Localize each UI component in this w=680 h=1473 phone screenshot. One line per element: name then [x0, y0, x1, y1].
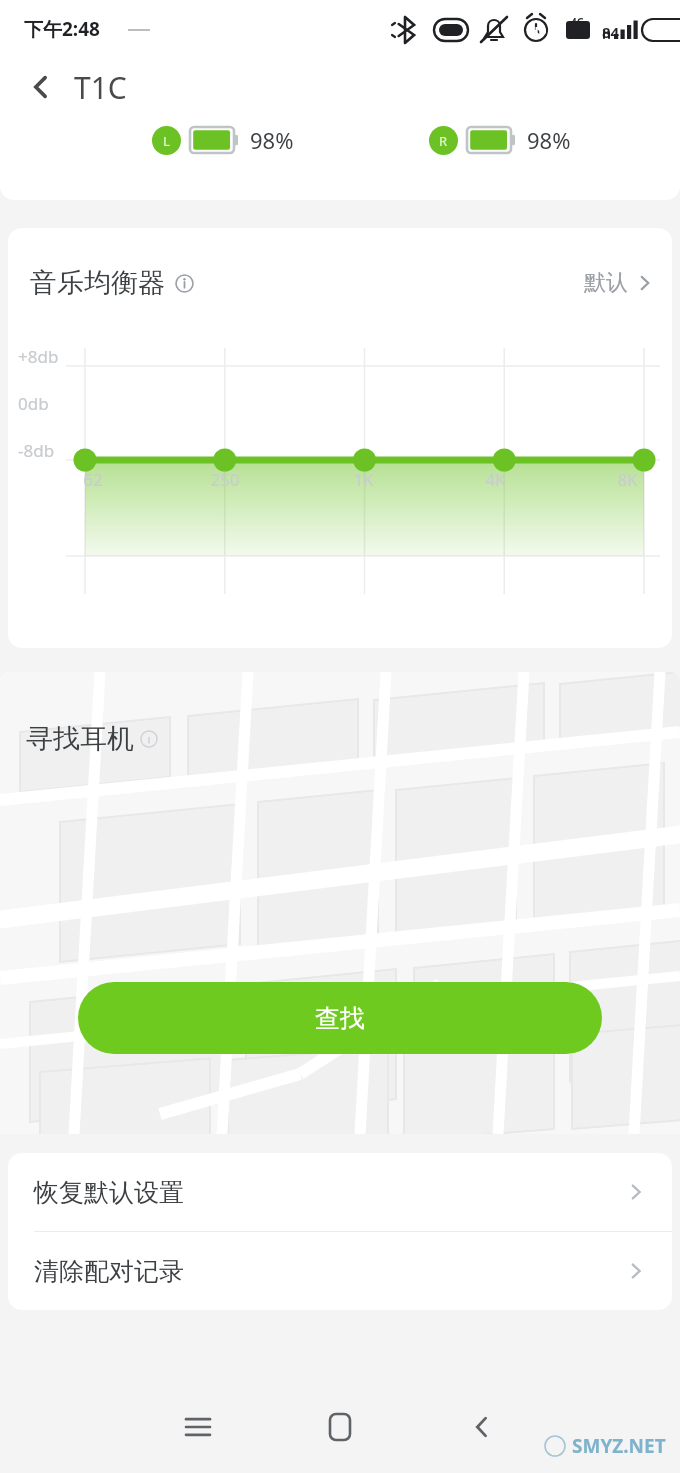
- button[interactable]: 清除配对记录: [8, 1232, 672, 1310]
- staticText: HD: [530, 23, 547, 38]
- button[interactable]: Recent apps: [160, 1389, 236, 1465]
- staticText: 98%: [250, 125, 294, 155]
- staticText: 清除配对记录: [34, 1256, 184, 1287]
- button[interactable]: 默认: [584, 269, 654, 297]
- staticText: T1C: [74, 67, 127, 108]
- staticText: 查找: [315, 1003, 365, 1034]
- button[interactable]: 恢复默认设置: [8, 1153, 672, 1231]
- staticText: SMYZ.NET: [572, 1433, 666, 1459]
- button[interactable]: Back: [444, 1389, 520, 1465]
- staticText: 恢复默认设置: [34, 1177, 184, 1208]
- staticText: -8db: [18, 439, 55, 462]
- staticText: L: [163, 132, 170, 150]
- staticText: 4G: [571, 15, 584, 29]
- staticText: 下午2:48: [24, 16, 100, 42]
- staticText: 8K: [617, 468, 638, 491]
- staticText: +8db: [18, 345, 59, 368]
- staticText: 0db: [18, 392, 49, 415]
- button[interactable]: Home: [302, 1389, 378, 1465]
- button[interactable]: Back: [18, 64, 64, 110]
- button[interactable]: 查找: [78, 982, 602, 1054]
- staticText: 250: [210, 468, 240, 491]
- staticText: 音乐均衡器: [30, 266, 165, 300]
- staticText: 84: [602, 22, 620, 42]
- staticText: 1K: [353, 468, 374, 491]
- staticText: 98%: [527, 125, 571, 155]
- staticText: 默认: [584, 269, 628, 297]
- staticText: R: [439, 132, 448, 150]
- staticText: 62: [83, 468, 103, 491]
- staticText: 4K: [485, 468, 506, 491]
- staticText: 寻找耳机: [26, 722, 134, 756]
